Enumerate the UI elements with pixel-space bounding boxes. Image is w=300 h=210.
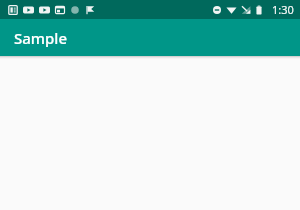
staticText: 1:30 bbox=[272, 2, 294, 17]
staticText: Sample bbox=[14, 28, 67, 48]
button[interactable]: Sample bbox=[0, 19, 300, 56]
